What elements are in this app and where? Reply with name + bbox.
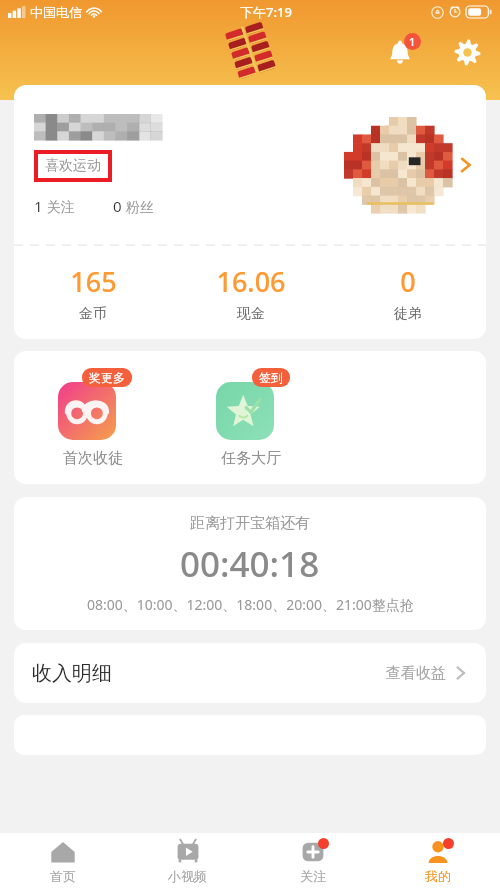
- staticText: 0: [400, 263, 416, 300]
- staticText: 首页: [50, 868, 76, 884]
- button[interactable]: 0: [329, 246, 486, 339]
- staticText: 小视频: [168, 868, 207, 884]
- button[interactable]: 喜欢运动: [14, 85, 486, 245]
- staticText: 任务大厅: [221, 449, 281, 468]
- button[interactable]: Settings: [448, 33, 486, 71]
- staticText: 我的: [425, 868, 451, 884]
- staticText: 收入明细: [32, 661, 112, 686]
- button[interactable]: Firecrackers promotion: [221, 24, 279, 74]
- staticText: 关注: [300, 868, 326, 884]
- button[interactable]: 距离打开宝箱还有: [14, 497, 486, 630]
- staticText: 喜欢运动: [45, 157, 101, 175]
- button[interactable]: Notifications, 1 new: [382, 32, 422, 72]
- button[interactable]: 首页: [0, 833, 125, 889]
- button[interactable]: 1: [34, 196, 75, 216]
- staticText: 距离打开宝箱还有: [190, 514, 310, 533]
- staticText: 0: [113, 196, 122, 216]
- button[interactable]: 奖更多: [14, 351, 172, 484]
- button[interactable]: 我的: [375, 833, 500, 889]
- staticText: 1: [34, 196, 43, 216]
- button[interactable]: 165: [14, 246, 172, 339]
- button[interactable]: 小视频: [125, 833, 250, 889]
- staticText: 签到: [259, 370, 283, 385]
- staticText: 首次收徒: [63, 449, 123, 468]
- staticText: 1: [409, 34, 416, 49]
- staticText: 粉丝: [122, 197, 154, 216]
- staticText: 徒弟: [394, 305, 422, 323]
- staticText: 165: [70, 263, 117, 300]
- button[interactable]: 签到: [172, 351, 329, 484]
- button[interactable]: 16.06: [172, 246, 329, 339]
- staticText: 下午7:19: [240, 3, 292, 21]
- staticText: 现金: [237, 305, 265, 323]
- staticText: 金币: [79, 305, 107, 323]
- staticText: 查看收益: [386, 664, 446, 683]
- button[interactable]: 0: [113, 196, 154, 216]
- staticText: 08:00、10:00、12:00、18:00、20:00、21:00整点抢: [87, 595, 414, 614]
- button[interactable]: 收入明细: [14, 643, 486, 703]
- button[interactable]: 关注: [250, 833, 375, 889]
- staticText: 16.06: [216, 263, 286, 300]
- staticText: 00:40:18: [180, 540, 320, 588]
- staticText: 中国电信: [30, 4, 82, 20]
- staticText: 奖更多: [89, 370, 125, 385]
- staticText: 关注: [43, 197, 75, 216]
